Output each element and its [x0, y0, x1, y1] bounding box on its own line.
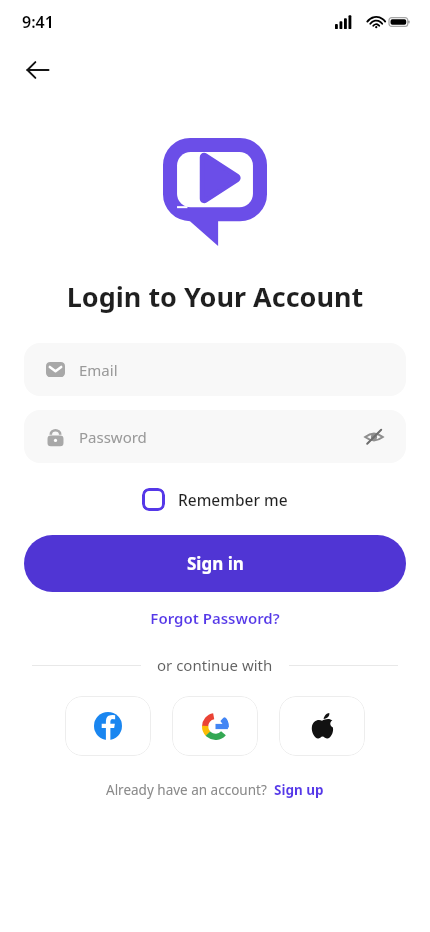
- button[interactable]: Sign up: [274, 781, 324, 799]
- button[interactable]: Email: [24, 343, 406, 396]
- staticText: or continue with: [157, 655, 273, 675]
- button[interactable]: Sign in with Apple: [279, 696, 365, 756]
- button[interactable]: Sign in with Facebook: [65, 696, 151, 756]
- staticText: Already have an account?: [106, 781, 267, 799]
- button[interactable]: Forgot Password?: [0, 608, 430, 628]
- staticText: Email: [79, 360, 118, 380]
- staticText: Sign up: [274, 781, 324, 799]
- staticText: Password: [79, 427, 147, 447]
- button[interactable]: Show password: [356, 419, 392, 455]
- staticText: Remember me: [178, 489, 288, 510]
- staticText: Sign in: [187, 552, 244, 575]
- button[interactable]: Sign in: [24, 535, 406, 592]
- button[interactable]: Remember me: [138, 484, 292, 515]
- button[interactable]: Password: [24, 410, 406, 463]
- staticText: 9:41: [22, 11, 54, 33]
- staticText: Login to Your Account: [0, 278, 430, 315]
- button[interactable]: Back: [16, 48, 60, 92]
- button[interactable]: Sign in with Google: [172, 696, 258, 756]
